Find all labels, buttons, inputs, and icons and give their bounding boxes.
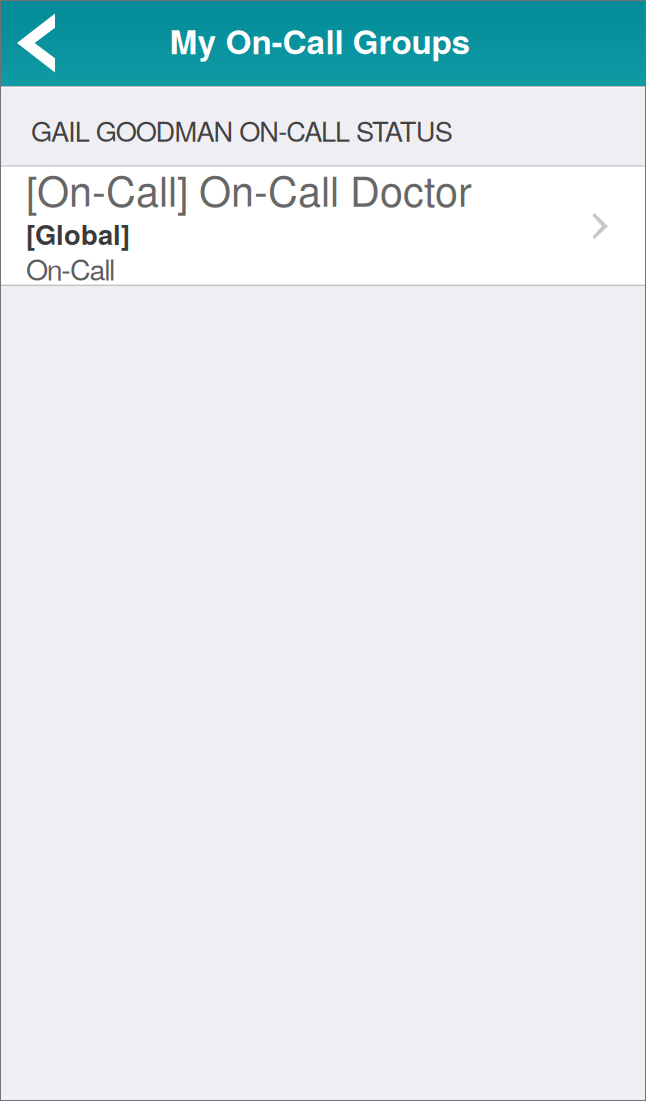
staticText: My On-Call Groups [169, 17, 470, 64]
staticText: On-Call [26, 248, 115, 289]
staticText: [On-Call] On-Call Doctor [26, 159, 472, 219]
staticText: GAIL GOODMAN ON-CALL STATUS [31, 110, 453, 149]
button[interactable]: [On-Call] On-Call Doctor [0, 167, 646, 285]
button[interactable]: Back [0, 0, 72, 86]
staticText: [Global] [26, 214, 130, 253]
